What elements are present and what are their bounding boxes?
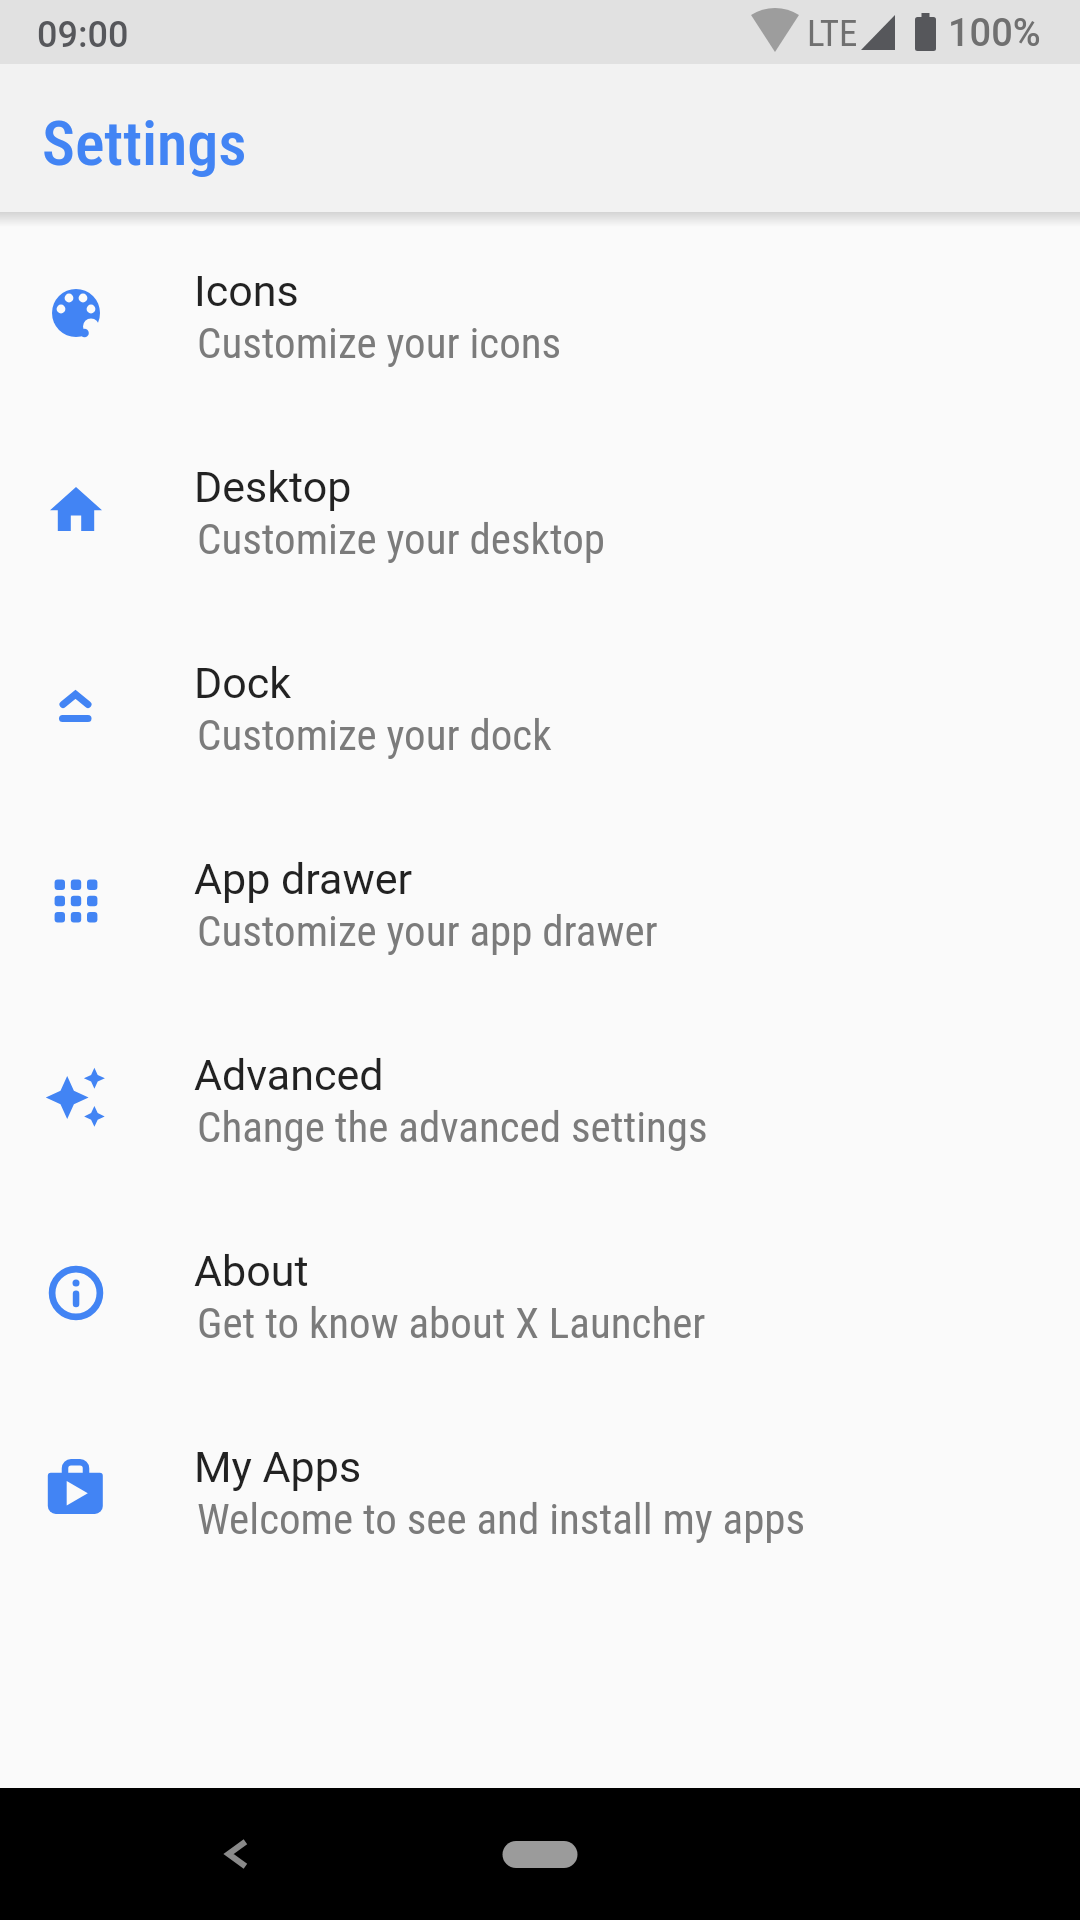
button[interactable] (190, 1810, 280, 1900)
button[interactable]: Desktop (0, 408, 1080, 604)
button[interactable]: Dock (0, 604, 1080, 800)
staticText: Desktop (194, 462, 352, 512)
staticText: Get to know about X Launcher (197, 1298, 706, 1348)
staticText: Icons (194, 266, 299, 316)
staticText: Customize your icons (197, 318, 562, 368)
staticText: Customize your desktop (197, 514, 605, 564)
button[interactable]: App drawer (0, 800, 1080, 996)
staticText: Welcome to see and install my apps (197, 1494, 806, 1544)
staticText: Change the advanced settings (197, 1102, 708, 1152)
staticText: Customize your dock (197, 710, 552, 760)
staticText: My Apps (194, 1442, 362, 1492)
staticText: LTE (807, 12, 858, 55)
staticText: App drawer (194, 854, 413, 904)
staticText: Dock (194, 658, 292, 708)
button[interactable]: Icons (0, 212, 1080, 408)
staticText: Advanced (194, 1050, 384, 1100)
staticText: 100% (948, 11, 1041, 56)
button[interactable] (495, 1810, 585, 1900)
staticText: Customize your app drawer (197, 906, 658, 956)
button[interactable]: Advanced (0, 996, 1080, 1192)
staticText: 09:00 (37, 14, 129, 56)
staticText: Settings (42, 107, 247, 180)
button[interactable]: About (0, 1192, 1080, 1388)
staticText: About (194, 1246, 309, 1296)
button[interactable]: My Apps (0, 1388, 1080, 1584)
